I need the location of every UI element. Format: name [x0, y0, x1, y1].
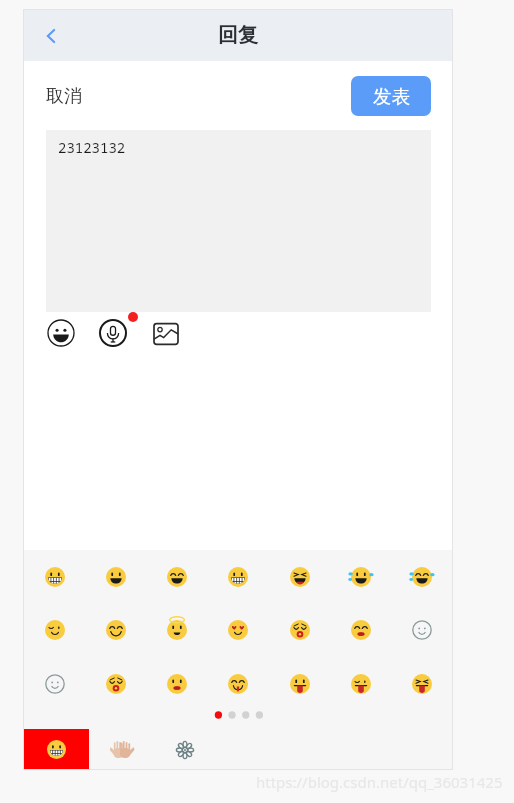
button[interactable]: 发表 [351, 76, 431, 116]
button[interactable]: Symbols tab [154, 729, 219, 769]
button[interactable]: Voice [99, 319, 127, 347]
staticText: 回复 [218, 23, 258, 48]
button[interactable]: Emoji 2 [146, 551, 207, 603]
button[interactable]: Picture [153, 321, 179, 347]
button[interactable]: Emoji 11 [269, 604, 330, 656]
button[interactable]: Emoji 8 [85, 604, 146, 656]
button[interactable]: Back [27, 12, 75, 60]
staticText: 发表 [373, 85, 410, 108]
button[interactable]: 23123132 [46, 130, 431, 312]
button[interactable]: Emoji 1 [85, 551, 146, 603]
button[interactable]: Emoji 16 [146, 658, 207, 710]
button[interactable]: Emoji 19 [330, 658, 391, 710]
staticText: https://blog.csdn.net/qq_36031425 [256, 772, 503, 792]
staticText: 23123132 [58, 138, 126, 157]
button[interactable]: Emoji 4 [269, 551, 330, 603]
button[interactable]: Emoji 14 [24, 658, 85, 710]
button[interactable]: 取消 [46, 85, 82, 108]
button[interactable]: Emoji 9 [146, 604, 207, 656]
button[interactable]: Emoji 13 [391, 604, 452, 656]
button[interactable]: Emoji 7 [24, 604, 85, 656]
button[interactable]: Emoji 10 [207, 604, 268, 656]
button[interactable]: Emoji 20 [391, 658, 452, 710]
button[interactable]: Emoji 12 [330, 604, 391, 656]
button[interactable]: Emoji 6 [391, 551, 452, 603]
button[interactable]: Emoji [47, 319, 75, 347]
button[interactable]: Emoji 15 [85, 658, 146, 710]
button[interactable]: Emoji tab [24, 729, 89, 769]
button[interactable]: Emoji 0 [24, 551, 85, 603]
button[interactable]: Emoji 3 [207, 551, 268, 603]
button[interactable]: Emoji 17 [207, 658, 268, 710]
button[interactable]: Gestures tab [89, 729, 154, 769]
button[interactable]: Emoji 5 [330, 551, 391, 603]
button[interactable]: Emoji 18 [269, 658, 330, 710]
staticText: 取消 [46, 85, 82, 108]
